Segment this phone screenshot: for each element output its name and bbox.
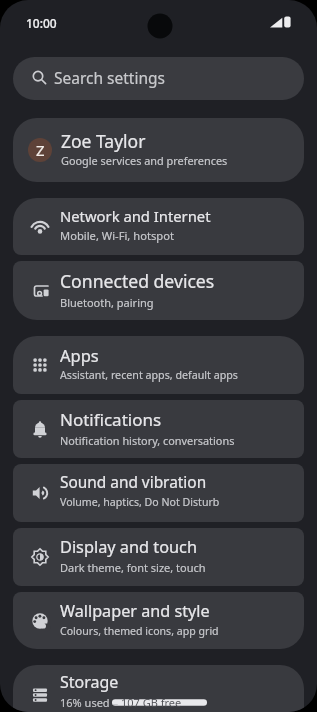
button[interactable]: Notifications bbox=[13, 400, 304, 458]
button[interactable]: Z bbox=[13, 118, 304, 182]
staticText: Assistant, recent apps, default apps bbox=[60, 368, 238, 383]
staticText: Colours, themed icons, app grid bbox=[60, 624, 219, 638]
staticText: Sound and vibration bbox=[60, 472, 207, 493]
button[interactable]: Sound and vibration bbox=[13, 464, 304, 522]
staticText: Storage bbox=[60, 671, 119, 693]
staticText: Google services and preferences bbox=[61, 153, 228, 168]
button[interactable]: Connected devices bbox=[13, 261, 304, 320]
staticText: 107 GB free bbox=[121, 695, 182, 710]
staticText: Wallpaper and style bbox=[60, 600, 210, 622]
button[interactable]: Apps bbox=[13, 336, 304, 394]
button[interactable]: Storage bbox=[13, 665, 304, 712]
staticText: Volume, haptics, Do Not Disturb bbox=[60, 495, 220, 509]
button[interactable]: Display and touch bbox=[13, 528, 304, 586]
staticText: Z bbox=[36, 140, 45, 160]
staticText: Dark theme, font size, touch bbox=[60, 560, 206, 575]
button[interactable]: Wallpaper and style bbox=[13, 592, 304, 649]
staticText: Mobile, Wi-Fi, hotspot bbox=[60, 228, 175, 243]
staticText: Display and touch bbox=[60, 536, 198, 558]
button[interactable]: Network and Internet bbox=[13, 198, 304, 255]
staticText: Notifications bbox=[60, 408, 162, 431]
staticText: Apps bbox=[60, 344, 99, 366]
staticText: 16% used – bbox=[60, 695, 121, 710]
staticText: 10:00 bbox=[26, 15, 57, 31]
staticText: Network and Internet bbox=[60, 206, 211, 226]
staticText: Search settings bbox=[54, 67, 165, 88]
staticText: Notification history, conversations bbox=[60, 433, 235, 448]
staticText: Bluetooth, pairing bbox=[60, 295, 154, 310]
button[interactable]: Search settings bbox=[13, 57, 304, 100]
staticText: Zoe Taylor bbox=[61, 129, 146, 153]
staticText: Connected devices bbox=[60, 269, 215, 293]
